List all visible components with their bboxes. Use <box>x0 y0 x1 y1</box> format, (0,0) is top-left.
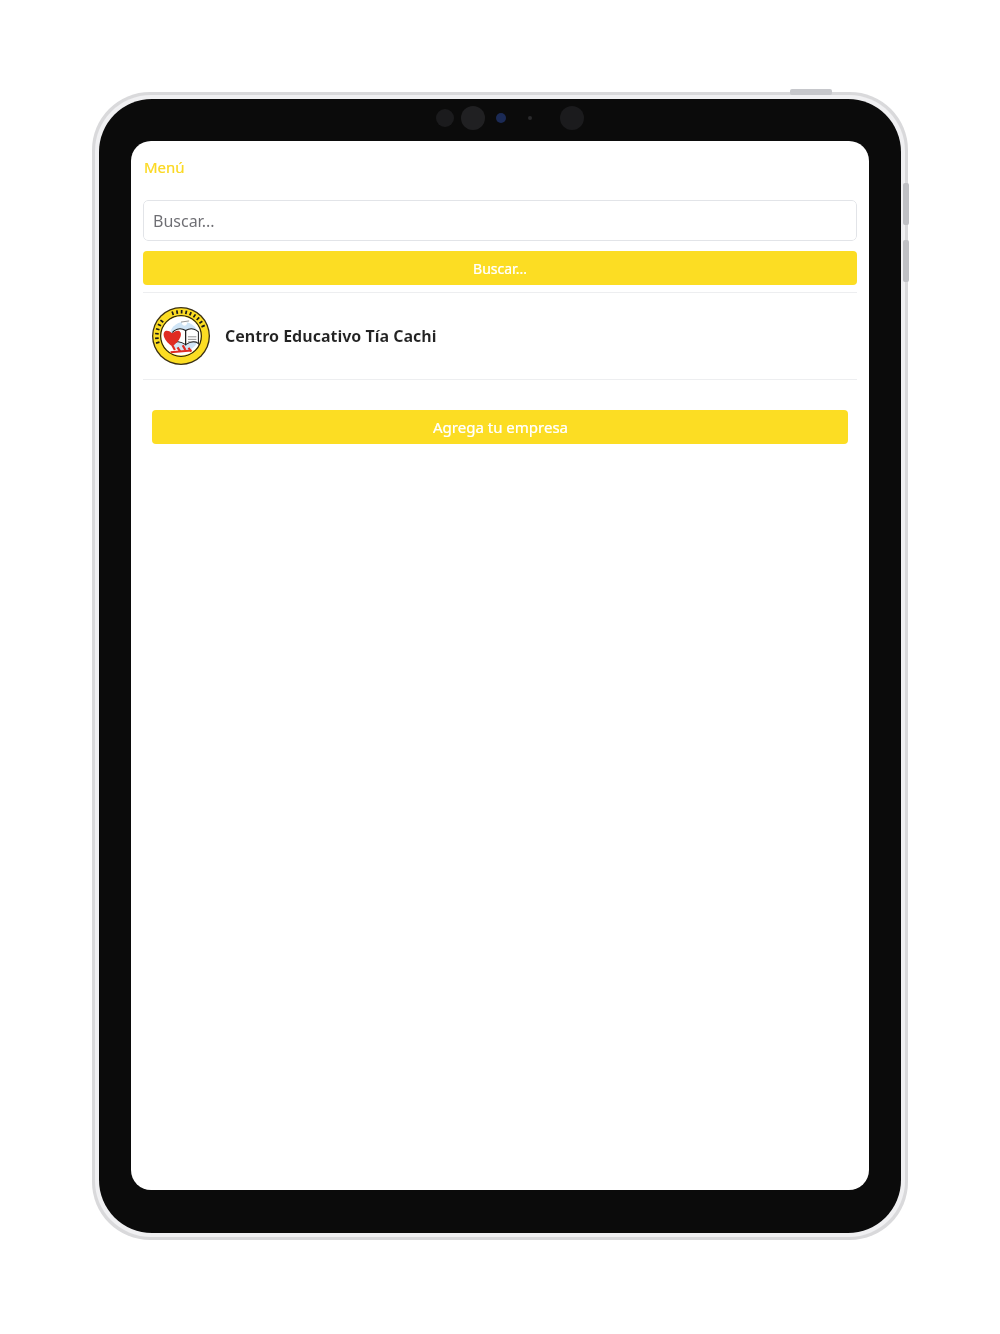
other: Centro Educativo Tía Cachi logo <box>152 307 210 365</box>
staticText: Buscar... <box>153 210 215 232</box>
staticText: Menú <box>144 157 185 177</box>
button[interactable]: Menú <box>142 155 187 179</box>
button[interactable]: Buscar... <box>143 200 857 241</box>
button[interactable]: Centro Educativo Tía Cachi logo <box>131 293 869 379</box>
button[interactable]: Buscar... <box>143 251 857 285</box>
button[interactable]: Agrega tu empresa <box>152 410 848 444</box>
staticText: Centro Educativo Tía Cachi <box>225 325 437 347</box>
staticText: Agrega tu empresa <box>433 417 568 437</box>
staticText: Buscar... <box>473 259 527 278</box>
